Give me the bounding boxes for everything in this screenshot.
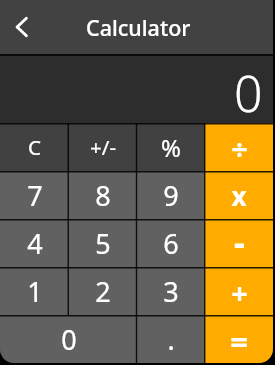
button[interactable]: C	[0, 123, 69, 171]
button[interactable]: %	[137, 123, 205, 171]
staticText: 3	[163, 273, 179, 310]
button[interactable]: ÷	[205, 123, 273, 171]
staticText: 8	[95, 177, 111, 214]
staticText: 0	[234, 59, 263, 126]
button[interactable]: x	[205, 171, 273, 219]
staticText: .	[167, 321, 175, 358]
staticText: =	[230, 320, 248, 362]
button[interactable]: 0	[0, 315, 137, 363]
staticText: 0	[61, 321, 77, 358]
button[interactable]: 3	[137, 267, 205, 315]
button[interactable]: 9	[137, 171, 205, 219]
button[interactable]: =	[205, 315, 273, 363]
button[interactable]: 4	[0, 219, 69, 267]
staticText: Calculator	[86, 13, 191, 42]
staticText: 9	[163, 177, 179, 214]
button[interactable]: 5	[69, 219, 137, 267]
staticText: 7	[27, 177, 43, 214]
button[interactable]: 1	[0, 267, 69, 315]
staticText: 2	[95, 273, 111, 310]
staticText: -	[234, 219, 245, 265]
staticText: C	[28, 133, 41, 161]
staticText: x	[231, 178, 247, 213]
button[interactable]: 7	[0, 171, 69, 219]
button[interactable]: +	[205, 267, 273, 315]
staticText: ÷	[231, 129, 248, 168]
staticText: 4	[27, 225, 43, 262]
button[interactable]: -	[205, 219, 273, 267]
button[interactable]: 2	[69, 267, 137, 315]
button[interactable]: 6	[137, 219, 205, 267]
button[interactable]: Back	[8, 13, 36, 41]
button[interactable]: 8	[69, 171, 137, 219]
button[interactable]: +/-	[69, 123, 137, 171]
staticText: +/-	[90, 133, 116, 161]
staticText: 1	[27, 273, 43, 310]
button[interactable]: .	[137, 315, 205, 363]
staticText: 6	[163, 225, 179, 262]
staticText: +	[231, 273, 248, 312]
staticText: 5	[95, 225, 111, 262]
staticText: %	[161, 131, 181, 164]
